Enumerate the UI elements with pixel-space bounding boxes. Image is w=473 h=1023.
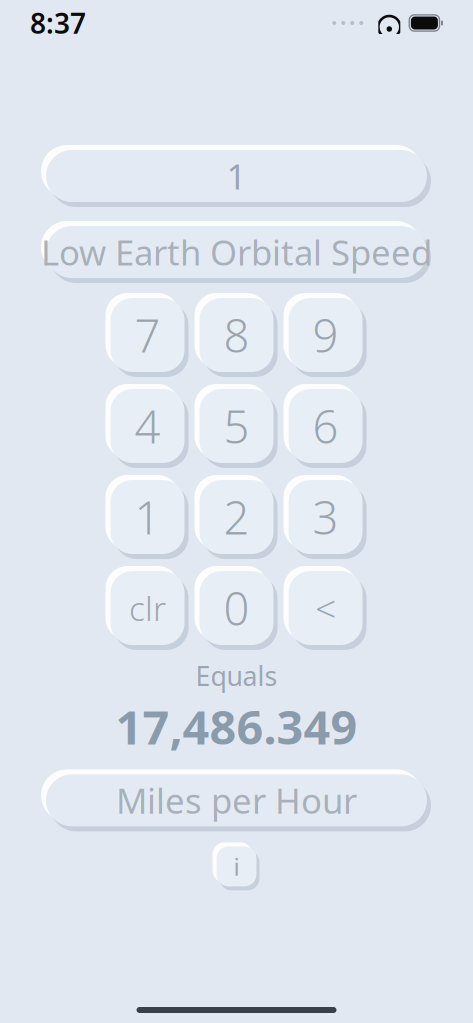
staticText: clr	[129, 586, 166, 630]
button[interactable]: 1	[110, 480, 184, 554]
staticText: 3	[312, 487, 338, 547]
button[interactable]: Miles per Hour	[39, 769, 434, 831]
staticText: Low Earth Orbital Speed	[41, 229, 432, 275]
button[interactable]: 7	[110, 298, 184, 372]
button[interactable]: 6	[288, 389, 362, 463]
staticText: 9	[312, 305, 338, 365]
staticText: Equals	[195, 658, 277, 693]
button[interactable]: <	[288, 571, 362, 645]
staticText: 7	[134, 305, 160, 365]
staticText: 8	[223, 305, 249, 365]
staticText: 1	[134, 487, 160, 547]
button[interactable]: 0	[199, 571, 273, 645]
staticText: 4	[134, 396, 160, 456]
staticText: 6	[312, 396, 338, 456]
staticText: 8:37	[30, 4, 86, 42]
button[interactable]: Information	[212, 842, 260, 890]
button[interactable]: clr	[110, 571, 184, 645]
staticText: <	[315, 583, 336, 633]
staticText: 1	[226, 153, 246, 199]
button[interactable]: 3	[288, 480, 362, 554]
staticText: 5	[223, 396, 249, 456]
button[interactable]: 2	[199, 480, 273, 554]
button[interactable]: 5	[199, 389, 273, 463]
button[interactable]: 1	[39, 145, 434, 207]
staticText: 0	[223, 578, 249, 638]
staticText: 2	[223, 487, 249, 547]
button[interactable]: 4	[110, 389, 184, 463]
staticText: 17,486.349	[115, 695, 357, 757]
staticText: i	[233, 850, 239, 882]
staticText: Miles per Hour	[116, 777, 357, 823]
button[interactable]: 8	[199, 298, 273, 372]
button[interactable]: Low Earth Orbital Speed	[39, 221, 434, 283]
button[interactable]: 9	[288, 298, 362, 372]
